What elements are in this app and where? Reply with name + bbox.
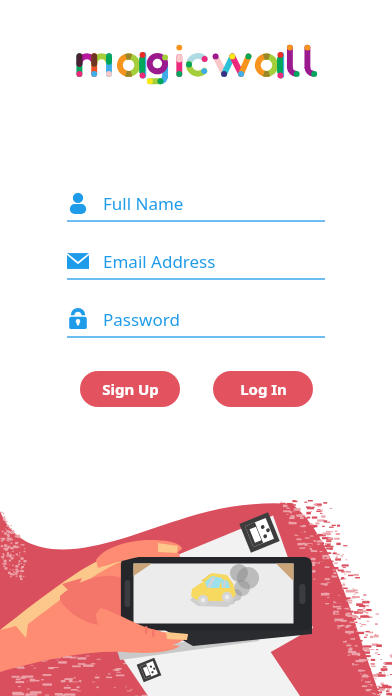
staticText: Sign Up bbox=[102, 379, 159, 399]
staticText: Full Name bbox=[103, 192, 184, 215]
staticText: Email Address bbox=[103, 250, 216, 273]
staticText: Log In bbox=[240, 379, 287, 399]
button[interactable]: Sign Up bbox=[80, 371, 180, 407]
button[interactable]: Log In bbox=[213, 371, 313, 407]
staticText: Password bbox=[103, 308, 180, 331]
